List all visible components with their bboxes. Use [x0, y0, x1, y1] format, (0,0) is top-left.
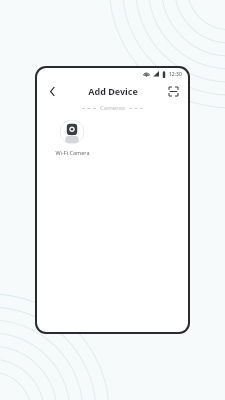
staticText: Add Device: [88, 85, 138, 97]
button[interactable]: Back: [44, 83, 60, 99]
button[interactable]: Scan QR code: [165, 83, 181, 99]
button[interactable]: Wi-Fi Camera: [50, 120, 94, 156]
staticText: 12:30: [169, 71, 182, 78]
staticText: Cameras: [100, 104, 125, 112]
staticText: Wi-Fi Camera: [55, 149, 90, 156]
